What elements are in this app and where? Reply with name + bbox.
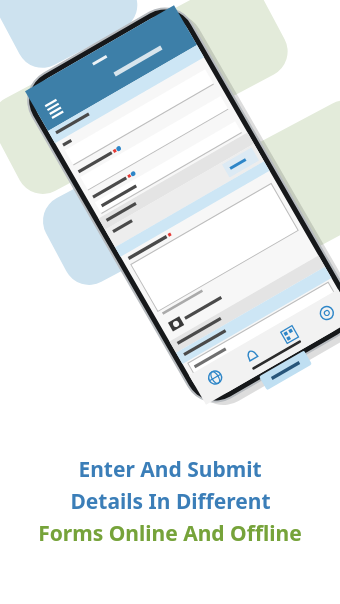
staticText: Details In Different <box>70 487 271 516</box>
button[interactable]: App preview <box>40 25 340 410</box>
staticText: Enter And Submit <box>78 455 262 484</box>
staticText: Forms Online And Offline <box>38 519 302 548</box>
